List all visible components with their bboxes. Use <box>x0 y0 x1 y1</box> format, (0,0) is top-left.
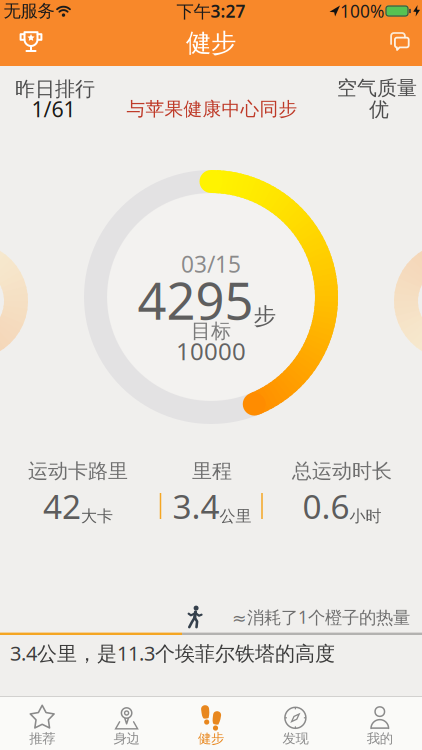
staticText: 0.6小时 <box>302 484 381 528</box>
staticText: 3.4公里，是11.3个埃菲尔铁塔的高度 <box>10 640 335 666</box>
staticText: 目标 <box>191 319 231 343</box>
staticText: 健步 <box>198 730 224 747</box>
staticText: 10000 <box>176 335 246 367</box>
staticText: 昨日排行 <box>15 77 95 101</box>
button[interactable]: 昨日排行 <box>10 77 100 121</box>
staticText: 里程 <box>192 459 232 483</box>
staticText: 1/61 <box>31 95 75 123</box>
staticText: 发现 <box>282 730 308 747</box>
button[interactable]: 健步 <box>169 699 253 750</box>
button[interactable]: 空气质量 <box>332 76 422 120</box>
staticText: 身边 <box>114 730 140 747</box>
staticText: 下午3:27 <box>176 0 245 22</box>
button[interactable] <box>377 22 421 62</box>
button[interactable]: 身边 <box>85 699 169 750</box>
staticText: ≈消耗了1个橙子的热量 <box>232 605 410 628</box>
staticText: 与苹果健康中心同步 <box>126 97 297 120</box>
button[interactable] <box>9 22 53 62</box>
staticText: 100% <box>340 0 384 22</box>
staticText: 空气质量 <box>337 76 417 100</box>
staticText: 无服务 <box>3 0 54 22</box>
button[interactable]: 发现 <box>253 699 337 750</box>
staticText: 42大卡 <box>43 484 113 528</box>
staticText: 总运动时长 <box>292 459 392 483</box>
staticText: 4295步 <box>137 266 276 334</box>
button[interactable]: 我的 <box>338 699 422 750</box>
staticText: 3.4公里 <box>172 484 251 528</box>
staticText: 我的 <box>367 730 393 747</box>
button[interactable]: 与苹果健康中心同步 <box>126 97 297 120</box>
button[interactable]: 推荐 <box>0 699 84 750</box>
staticText: 运动卡路里 <box>28 459 128 483</box>
staticText: 优 <box>369 97 389 122</box>
staticText: 推荐 <box>29 730 55 747</box>
staticText: 03/15 <box>181 249 241 279</box>
staticText: 健步 <box>186 27 236 58</box>
